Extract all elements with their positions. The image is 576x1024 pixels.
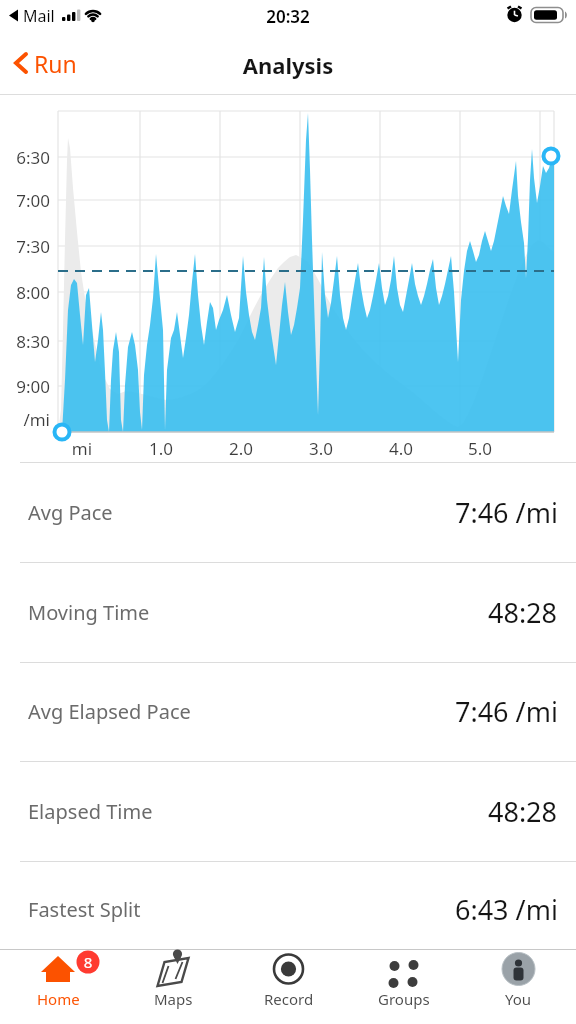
staticText: Avg Pace bbox=[28, 499, 113, 526]
staticText: 8:00 bbox=[4, 281, 50, 304]
staticText: 8:30 bbox=[4, 330, 50, 353]
staticText: 6:43 /mi bbox=[455, 891, 558, 928]
staticText: You bbox=[505, 989, 532, 1009]
staticText: Moving Time bbox=[28, 599, 150, 626]
button[interactable]: Maps bbox=[116, 949, 231, 1024]
staticText: 2.0 bbox=[221, 437, 261, 460]
staticText: Record bbox=[264, 989, 314, 1009]
button[interactable]: You bbox=[461, 949, 576, 1024]
staticText: 7:00 bbox=[4, 189, 50, 212]
staticText: Avg Elapsed Pace bbox=[28, 698, 191, 725]
staticText: Home bbox=[37, 989, 80, 1009]
staticText: Run bbox=[34, 48, 77, 79]
staticText: 20:32 bbox=[238, 5, 338, 28]
staticText: 48:28 bbox=[488, 594, 558, 631]
button[interactable]: Elapsed Time bbox=[28, 761, 558, 861]
button[interactable]: Record bbox=[231, 949, 346, 1024]
staticText: 7:46 /mi bbox=[455, 494, 558, 531]
button[interactable]: Avg Elapsed Pace bbox=[28, 662, 558, 761]
staticText: 7:46 /mi bbox=[455, 693, 558, 730]
staticText: Analysis bbox=[188, 50, 388, 80]
staticText: Elapsed Time bbox=[28, 798, 153, 825]
staticText: Groups bbox=[378, 989, 430, 1009]
staticText: 5.0 bbox=[460, 437, 500, 460]
staticText: 3.0 bbox=[301, 437, 341, 460]
button[interactable]: Fastest Split bbox=[28, 861, 558, 957]
button[interactable]: Run bbox=[8, 32, 77, 94]
staticText: /mi bbox=[4, 408, 50, 431]
button[interactable]: Groups bbox=[346, 949, 461, 1024]
staticText: Fastest Split bbox=[28, 896, 141, 923]
staticText: 4.0 bbox=[381, 437, 421, 460]
staticText: 8 bbox=[81, 952, 95, 972]
button[interactable]: Avg Pace bbox=[28, 462, 558, 562]
staticText: 9:00 bbox=[4, 375, 50, 398]
button[interactable]: Moving Time bbox=[28, 562, 558, 662]
staticText: 48:28 bbox=[488, 793, 558, 830]
staticText: mi bbox=[62, 437, 102, 460]
staticText: 7:30 bbox=[4, 235, 50, 258]
staticText: Maps bbox=[154, 989, 193, 1009]
staticText: Mail bbox=[23, 5, 55, 27]
staticText: 6:30 bbox=[4, 146, 50, 169]
staticText: 1.0 bbox=[141, 437, 181, 460]
button[interactable]: Home bbox=[0, 949, 116, 1024]
